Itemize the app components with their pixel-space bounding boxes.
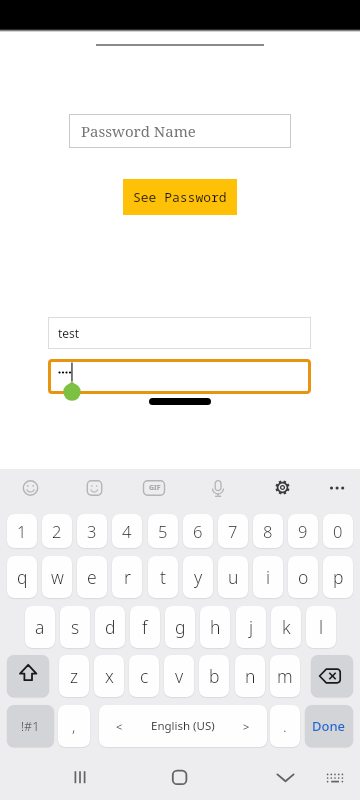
button[interactable]: f bbox=[130, 606, 160, 648]
button[interactable]: Done bbox=[305, 705, 353, 747]
button[interactable]: b bbox=[199, 655, 229, 697]
button[interactable]: v bbox=[164, 655, 194, 697]
button[interactable]: a bbox=[25, 606, 55, 648]
button[interactable]: z bbox=[59, 655, 89, 697]
staticText: 6 bbox=[193, 520, 203, 542]
staticText: s bbox=[71, 615, 80, 639]
staticText: t bbox=[160, 565, 166, 589]
button[interactable]: d bbox=[95, 606, 125, 648]
button[interactable]: English (US) bbox=[99, 705, 267, 747]
staticText: GIF bbox=[149, 483, 161, 493]
button[interactable]: 4 bbox=[112, 514, 142, 548]
staticText: v bbox=[175, 664, 184, 688]
button[interactable]: 8 bbox=[253, 514, 283, 548]
button[interactable]: See Password bbox=[123, 179, 237, 215]
staticText: English (US) bbox=[151, 718, 215, 734]
button[interactable]: 0 bbox=[323, 514, 353, 548]
button[interactable]: k bbox=[271, 606, 301, 648]
button[interactable]: s bbox=[60, 606, 90, 648]
staticText: 4 bbox=[122, 520, 132, 542]
button[interactable]: u bbox=[218, 556, 248, 598]
staticText: a bbox=[35, 615, 45, 639]
staticText: m bbox=[277, 664, 293, 688]
staticText: 1 bbox=[17, 520, 27, 542]
staticText: i bbox=[266, 565, 271, 589]
button[interactable]: 1 bbox=[7, 514, 37, 548]
button[interactable]: h bbox=[200, 606, 230, 648]
button[interactable]: m bbox=[270, 655, 300, 697]
staticText: 2 bbox=[52, 520, 62, 542]
staticText: l bbox=[319, 615, 324, 639]
staticText: x bbox=[105, 664, 114, 688]
staticText: b bbox=[209, 664, 220, 688]
staticText: p bbox=[333, 565, 344, 589]
staticText: > bbox=[243, 719, 250, 734]
staticText: . bbox=[283, 716, 287, 736]
button[interactable]: e bbox=[77, 556, 107, 598]
staticText: See Password bbox=[133, 188, 227, 206]
button[interactable]: i bbox=[253, 556, 283, 598]
button[interactable]: 5 bbox=[148, 514, 178, 548]
button[interactable]: . bbox=[270, 705, 300, 747]
button[interactable]: c bbox=[129, 655, 159, 697]
staticText: 5 bbox=[158, 520, 168, 542]
button[interactable]: !#1 bbox=[7, 705, 54, 747]
staticText: y bbox=[194, 565, 203, 589]
staticText: f bbox=[142, 615, 148, 639]
button[interactable]: 6 bbox=[183, 514, 213, 548]
button[interactable]: test bbox=[58, 317, 311, 349]
button[interactable]: q bbox=[7, 556, 37, 598]
staticText: e bbox=[87, 565, 97, 589]
staticText: c bbox=[140, 664, 149, 688]
button[interactable]: j bbox=[236, 606, 266, 648]
staticText: u bbox=[228, 565, 239, 589]
button[interactable]: 7 bbox=[218, 514, 248, 548]
staticText: 3 bbox=[87, 520, 97, 542]
staticText: r bbox=[124, 565, 131, 589]
staticText: Done bbox=[312, 717, 346, 735]
staticText: Password Name bbox=[81, 121, 196, 141]
staticText: test bbox=[58, 325, 80, 341]
button[interactable]: t bbox=[148, 556, 178, 598]
button[interactable] bbox=[311, 655, 353, 697]
staticText: k bbox=[282, 615, 291, 639]
button[interactable]: , bbox=[58, 705, 90, 747]
staticText: q bbox=[17, 565, 28, 589]
staticText: j bbox=[249, 615, 254, 639]
button[interactable]: 9 bbox=[288, 514, 318, 548]
staticText: 7 bbox=[228, 520, 238, 542]
button[interactable]: y bbox=[183, 556, 213, 598]
staticText: h bbox=[210, 615, 221, 639]
button[interactable] bbox=[7, 655, 49, 697]
staticText: , bbox=[72, 716, 76, 736]
button[interactable]: 3 bbox=[77, 514, 107, 548]
staticText: < bbox=[116, 719, 123, 734]
button[interactable]: Password Name bbox=[81, 114, 291, 148]
button[interactable]: w bbox=[42, 556, 72, 598]
staticText: g bbox=[175, 615, 186, 639]
staticText: z bbox=[70, 664, 79, 688]
button[interactable]: p bbox=[323, 556, 353, 598]
button[interactable]: o bbox=[288, 556, 318, 598]
button[interactable] bbox=[48, 359, 311, 394]
staticText: 0 bbox=[333, 520, 343, 542]
button[interactable]: n bbox=[235, 655, 265, 697]
staticText: w bbox=[51, 565, 64, 589]
button[interactable]: 2 bbox=[42, 514, 72, 548]
button[interactable]: r bbox=[112, 556, 142, 598]
staticText: d bbox=[105, 615, 116, 639]
button[interactable]: x bbox=[94, 655, 124, 697]
staticText: 9 bbox=[298, 520, 308, 542]
button[interactable]: l bbox=[306, 606, 336, 648]
staticText: 8 bbox=[263, 520, 273, 542]
staticText: !#1 bbox=[21, 718, 40, 735]
staticText: n bbox=[245, 664, 256, 688]
button[interactable]: g bbox=[165, 606, 195, 648]
staticText: o bbox=[298, 565, 309, 589]
